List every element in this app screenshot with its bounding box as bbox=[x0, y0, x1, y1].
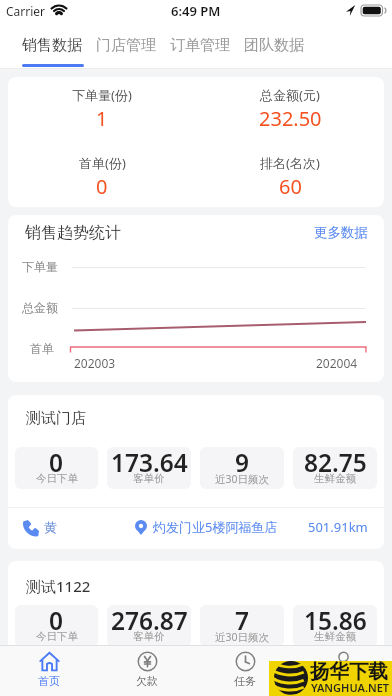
staticText: 测试1122 bbox=[26, 576, 91, 596]
button[interactable]: 0 bbox=[15, 447, 98, 489]
staticText: 生鲜金额 bbox=[314, 630, 356, 643]
button[interactable]: 276.87 bbox=[107, 605, 191, 647]
staticText: 9 bbox=[235, 447, 250, 479]
staticText: 下单量(份) bbox=[72, 86, 132, 104]
staticText: 首单(份) bbox=[79, 154, 126, 172]
staticText: 任务 bbox=[234, 674, 256, 688]
button[interactable]: 173.64 bbox=[107, 447, 191, 489]
staticText: 501.91km bbox=[308, 518, 368, 536]
staticText: 15.86 bbox=[304, 605, 367, 637]
button[interactable]: 任务 bbox=[196, 646, 294, 696]
staticText: 60 bbox=[279, 173, 302, 200]
button[interactable]: 我的 bbox=[294, 646, 392, 696]
staticText: 总金额(元) bbox=[260, 86, 320, 104]
button[interactable]: 灼发门业5楼阿福鱼店 bbox=[153, 518, 278, 536]
staticText: 欠款 bbox=[136, 674, 158, 688]
staticText: 今日下单 bbox=[36, 630, 78, 643]
staticText: 6:49 PM bbox=[171, 2, 221, 20]
staticText: 总金额 bbox=[22, 300, 58, 315]
staticText: 销售趋势统计 bbox=[25, 223, 121, 243]
staticText: 232.50 bbox=[259, 105, 322, 132]
staticText: 今日下单 bbox=[36, 472, 78, 485]
button[interactable]: 欠款 bbox=[98, 646, 196, 696]
button[interactable]: 销售数据 bbox=[22, 36, 82, 55]
staticText: 82.75 bbox=[304, 447, 367, 479]
button[interactable]: 首页 bbox=[0, 646, 98, 696]
staticText: 下单量 bbox=[22, 259, 58, 274]
staticText: 173.64 bbox=[111, 447, 188, 479]
staticText: 近30日频次 bbox=[215, 630, 270, 644]
staticText: 排名(名次) bbox=[260, 154, 320, 172]
staticText: 测试门店 bbox=[26, 409, 86, 428]
staticText: 扬华下载 bbox=[310, 659, 388, 684]
button[interactable]: 82.75 bbox=[293, 447, 377, 489]
staticText: 1 bbox=[96, 105, 108, 132]
staticText: 生鲜金额 bbox=[314, 472, 356, 485]
button[interactable]: 黄 bbox=[44, 519, 57, 535]
staticText: 近30日频次 bbox=[215, 472, 270, 486]
staticText: 202004 bbox=[316, 355, 358, 371]
staticText: 202003 bbox=[74, 355, 116, 371]
button[interactable]: 9 bbox=[200, 447, 284, 489]
staticText: 0 bbox=[49, 605, 64, 637]
staticText: 0 bbox=[49, 447, 64, 479]
button[interactable]: 0 bbox=[15, 605, 98, 647]
staticText: 7 bbox=[235, 605, 250, 637]
button[interactable]: 团队数据 bbox=[244, 36, 304, 55]
staticText: YANGHUA.NET bbox=[311, 680, 390, 695]
staticText: Carrier bbox=[6, 3, 46, 19]
staticText: 首页 bbox=[38, 674, 60, 688]
staticText: 客单价 bbox=[133, 472, 165, 485]
staticText: 首单 bbox=[30, 341, 54, 356]
button[interactable]: 更多数据 bbox=[314, 224, 368, 241]
staticText: 0 bbox=[96, 173, 108, 200]
staticText: 客单价 bbox=[133, 630, 165, 643]
button[interactable]: 门店管理 bbox=[96, 36, 156, 55]
staticText: 我的 bbox=[332, 674, 354, 688]
button[interactable]: 7 bbox=[200, 605, 284, 647]
button[interactable]: 订单管理 bbox=[170, 36, 230, 55]
button[interactable]: 15.86 bbox=[293, 605, 377, 647]
staticText: 276.87 bbox=[111, 605, 188, 637]
